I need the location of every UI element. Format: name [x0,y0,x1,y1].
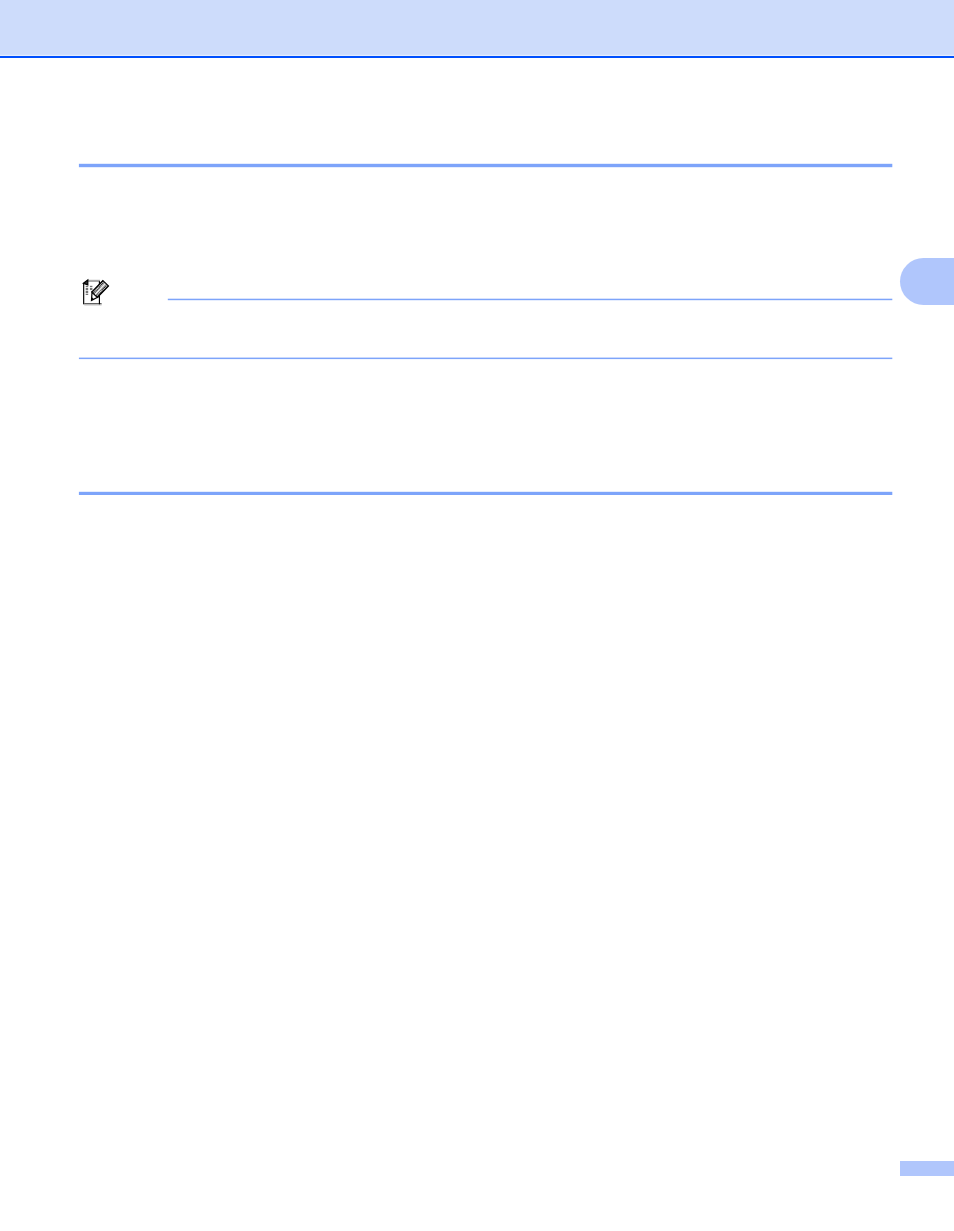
button[interactable]: Note [82,276,114,308]
button[interactable]: Chapter tab [900,258,954,305]
